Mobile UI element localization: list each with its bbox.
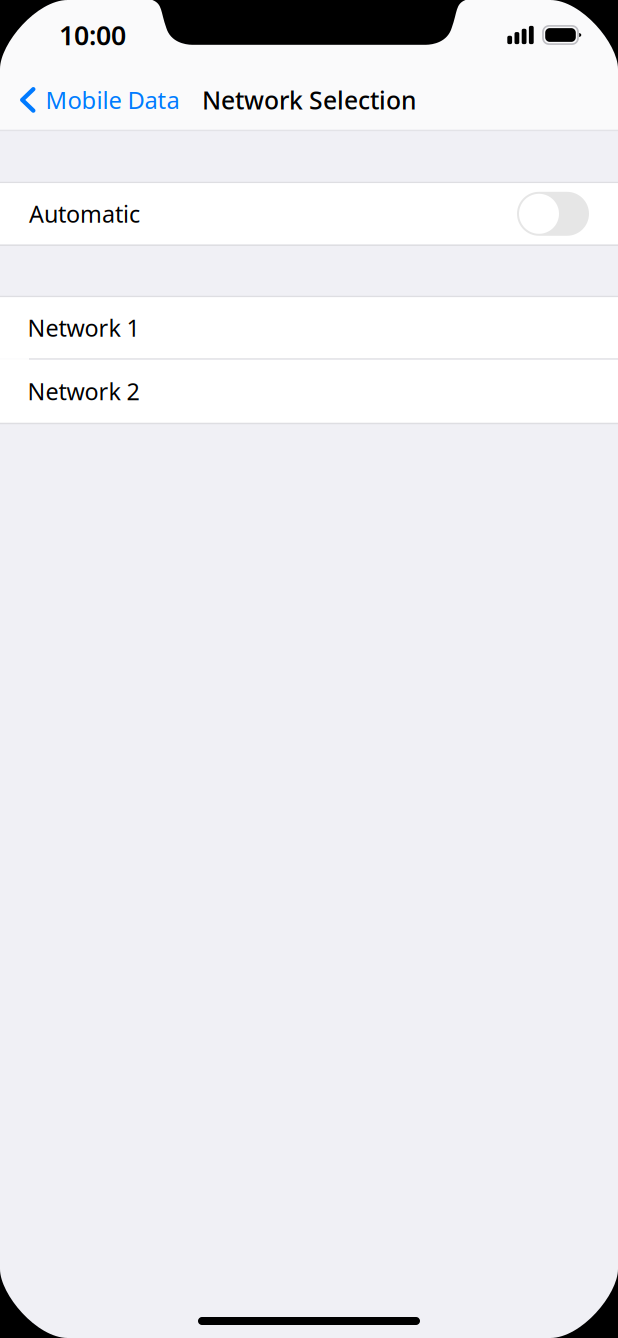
button[interactable]: Automatic (0, 183, 618, 244)
button[interactable]: Mobile Data (0, 70, 193, 130)
staticText: Mobile Data (45, 84, 179, 116)
button[interactable]: Network 1 (0, 297, 618, 358)
staticText: Network Selection (202, 83, 416, 117)
button[interactable]: Network 2 (0, 360, 618, 423)
staticText: 10:00 (59, 17, 126, 53)
staticText: Network 2 (27, 375, 139, 407)
staticText: Automatic (29, 198, 140, 230)
staticText: Network 1 (27, 312, 139, 344)
